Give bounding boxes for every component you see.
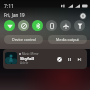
button[interactable]: Shuffle — [55, 55, 64, 64]
button[interactable]: Airplane mode — [60, 20, 71, 31]
button[interactable]: Music Mirror — [3, 49, 87, 69]
button[interactable]: Device control — [4, 35, 43, 44]
button[interactable]: Flashlight — [74, 20, 85, 31]
button[interactable]: Auto rotate — [46, 20, 57, 31]
staticText: Skyfall — [20, 56, 34, 62]
button[interactable]: Next — [75, 55, 84, 64]
staticText: Music Mirror — [22, 52, 39, 56]
button[interactable]: Media output — [48, 35, 87, 44]
staticText: Fri, Jan 19 — [4, 12, 25, 18]
staticText: 7:11 — [4, 3, 14, 10]
staticText: Adele — [20, 61, 29, 65]
staticText: Media output — [56, 37, 79, 42]
staticText: Device control — [12, 37, 36, 42]
button[interactable]: Wi-Fi — [4, 20, 15, 31]
button[interactable]: Bluetooth — [32, 20, 43, 31]
button[interactable]: Pause — [65, 55, 74, 64]
button[interactable]: Settings — [78, 11, 87, 20]
button[interactable]: Do not disturb — [18, 20, 29, 31]
